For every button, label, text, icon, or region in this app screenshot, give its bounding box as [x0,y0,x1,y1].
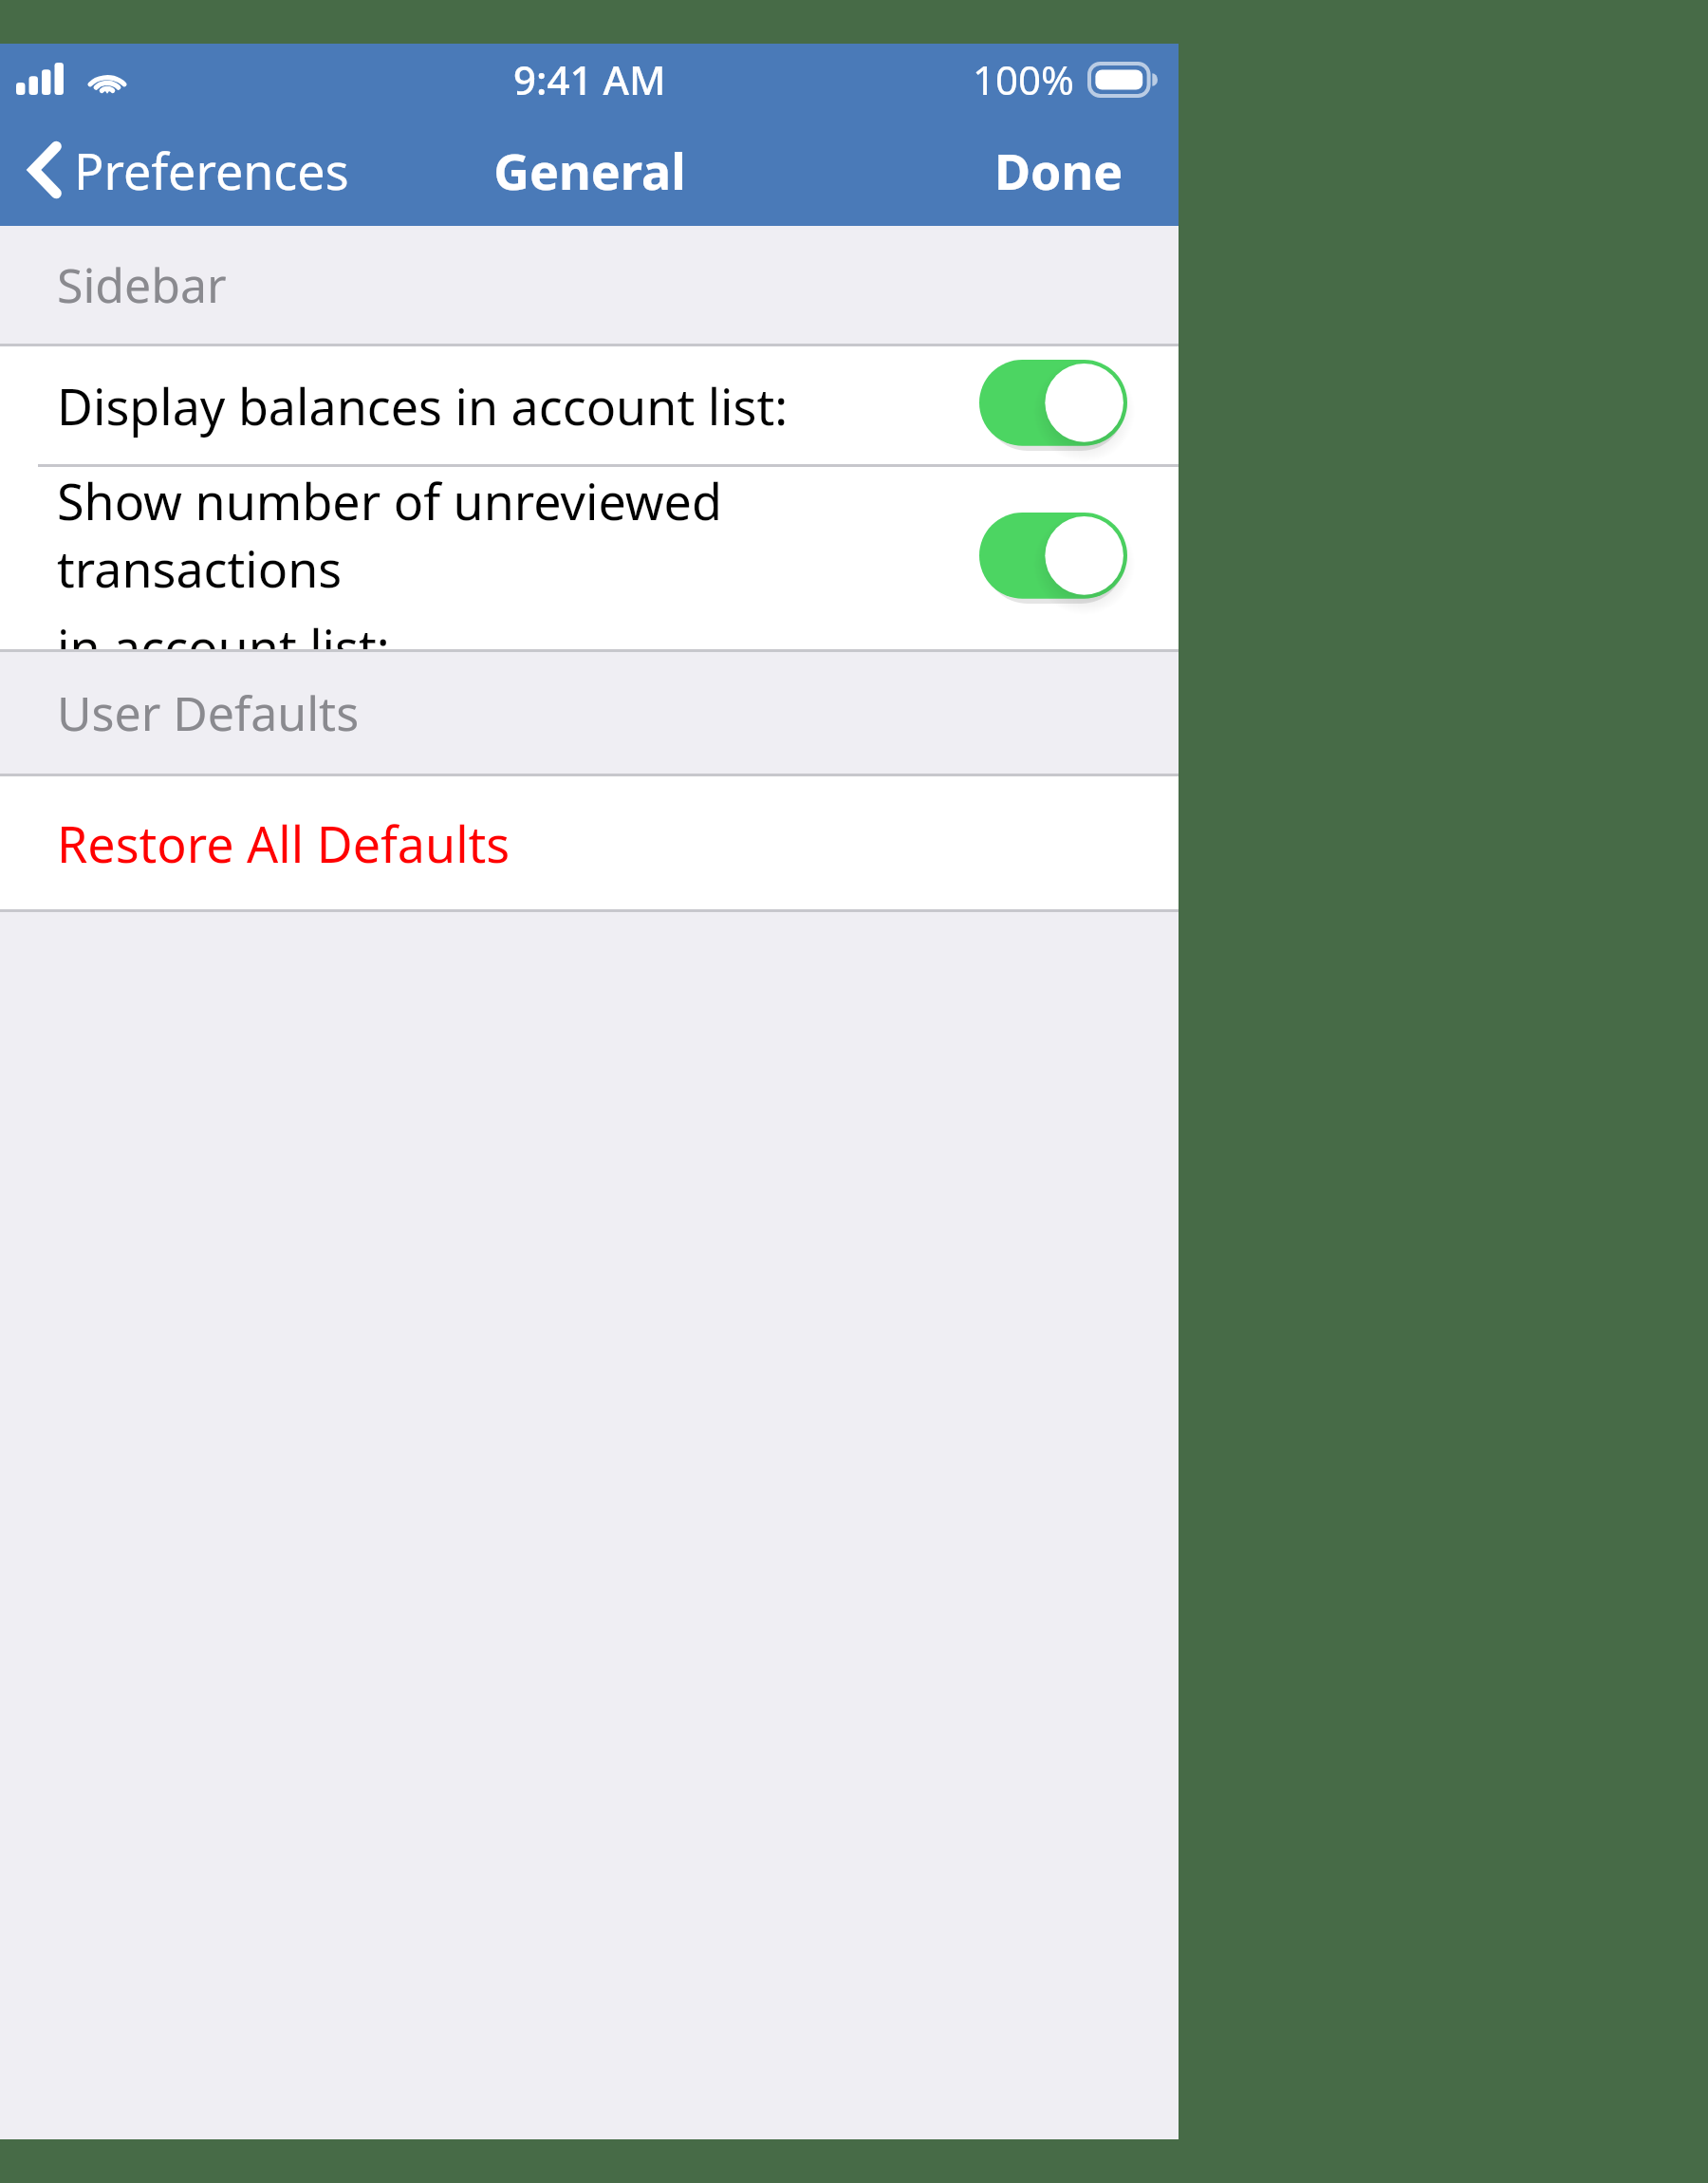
staticText: Display balances in account list: [57,372,789,439]
staticText: Sidebar [57,252,227,317]
staticText: Preferences [74,137,349,204]
staticText: User Defaults [57,681,360,745]
button[interactable]: Preferences [0,114,366,226]
button[interactable]: Display balances in account list: [0,346,1179,464]
staticText: Done [994,137,1123,204]
button[interactable]: Toggle on [979,360,1127,451]
button[interactable]: Done [939,114,1179,226]
staticText: Restore All Defaults [57,810,511,877]
button[interactable]: Show number of unreviewed transactions [0,467,1179,649]
staticText: General [493,137,686,204]
staticText: in account list: [57,613,390,649]
staticText: 9:41 AM [513,52,666,106]
staticText: Show number of unreviewed transactions [57,467,941,602]
button[interactable]: Restore All Defaults [0,776,1179,909]
button[interactable]: Toggle on [979,513,1127,604]
staticText: 100% [973,52,1074,106]
